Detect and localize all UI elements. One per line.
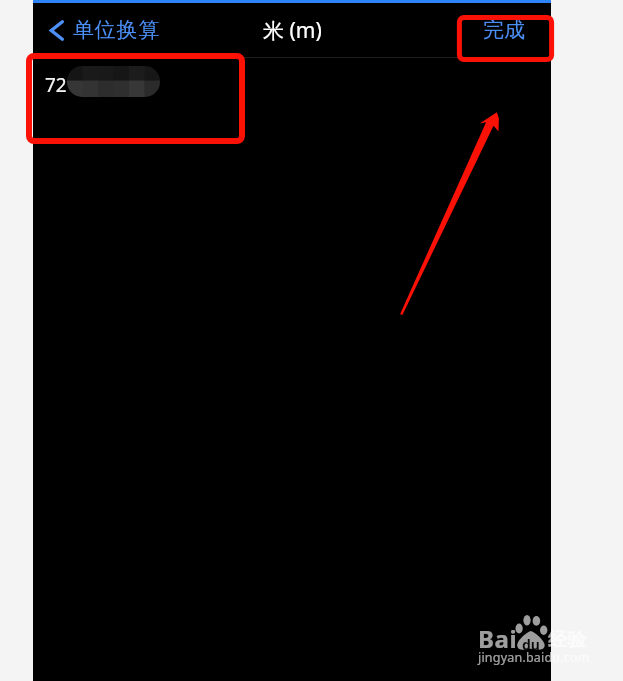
staticText: 完成 (483, 17, 525, 43)
button[interactable]: 72 (33, 58, 551, 111)
staticText: du (522, 635, 540, 654)
staticText: 米 (m) (263, 16, 322, 45)
staticText: 单位换算 (73, 17, 161, 43)
staticText: 经验 (548, 628, 586, 652)
staticText: jingyan.baidu.com (478, 649, 590, 666)
staticText: Bai (478, 622, 518, 655)
staticText: 72 (45, 72, 67, 98)
other: Back (50, 21, 63, 40)
button[interactable]: 完成 (457, 7, 551, 53)
button[interactable]: Back (33, 9, 171, 51)
